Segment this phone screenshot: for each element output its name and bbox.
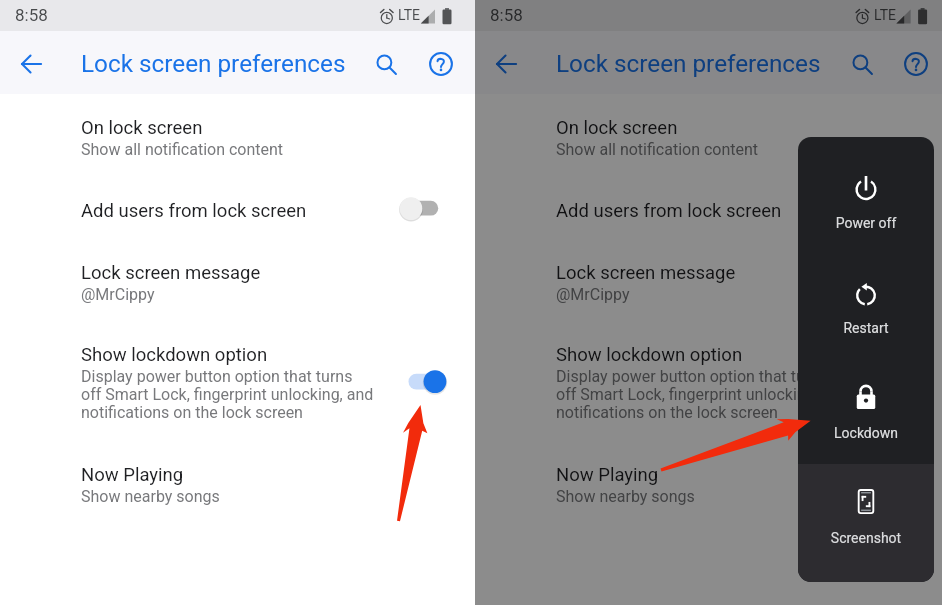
staticText: Show all notification content <box>81 140 284 159</box>
button[interactable]: Help <box>896 44 936 84</box>
staticText: On lock screen <box>556 117 678 139</box>
staticText: LTE <box>398 7 420 23</box>
button[interactable]: Add users from lock screen <box>0 191 475 221</box>
button[interactable]: Now Playing <box>0 455 475 503</box>
staticText: Lock screen preferences <box>81 49 346 77</box>
staticText: Now Playing <box>81 464 184 486</box>
staticText: Lock screen preferences <box>556 49 821 77</box>
staticText: @MrCippy <box>556 285 630 304</box>
button[interactable]: Restart <box>798 242 934 347</box>
button[interactable]: On lock screen <box>475 108 942 156</box>
staticText: Add users from lock screen <box>556 200 782 222</box>
button[interactable]: Back <box>486 43 527 84</box>
button[interactable]: Lock screen message <box>475 253 942 301</box>
staticText: Display power button option that turns o… <box>81 367 374 422</box>
button[interactable]: Now Playing <box>475 455 942 503</box>
staticText: Show nearby songs <box>81 487 220 506</box>
staticText: Lockdown <box>798 425 934 441</box>
staticText: 8:58 <box>15 5 48 25</box>
button[interactable]: Add users from lock screen, off <box>872 191 920 227</box>
staticText: Screenshot <box>798 530 934 546</box>
button[interactable]: Add users from lock screen <box>475 191 942 221</box>
staticText: Now Playing <box>556 464 659 486</box>
button[interactable]: Back <box>11 43 52 84</box>
button[interactable]: Show lockdown option <box>475 335 942 419</box>
staticText: Lock screen message <box>81 262 261 284</box>
staticText: Lock screen message <box>556 262 736 284</box>
staticText: Show lockdown option <box>556 344 743 366</box>
button[interactable]: Search <box>366 44 406 84</box>
button[interactable]: Screenshot <box>798 452 934 557</box>
staticText: LTE <box>874 7 896 23</box>
staticText: Add users from lock screen <box>81 200 307 222</box>
staticText: 8:58 <box>490 5 523 25</box>
staticText: On lock screen <box>81 117 203 139</box>
staticText: Restart <box>798 320 934 336</box>
button[interactable]: Help <box>421 44 461 84</box>
staticText: @MrCippy <box>81 285 155 304</box>
button[interactable]: On lock screen <box>0 108 475 156</box>
button[interactable]: Show lockdown option <box>0 335 475 419</box>
button[interactable]: Add users from lock screen, off <box>396 191 444 227</box>
staticText: Display power button option that turns o… <box>556 367 849 422</box>
staticText: Power off <box>798 215 934 231</box>
staticText: Show lockdown option <box>81 344 268 366</box>
button[interactable]: Lockdown <box>798 347 934 452</box>
button[interactable]: Power off <box>798 137 934 242</box>
button[interactable]: Search <box>842 44 882 84</box>
staticText: Show nearby songs <box>556 487 695 506</box>
staticText: Show all notification content <box>556 140 759 159</box>
button[interactable]: Lock screen message <box>0 253 475 301</box>
button[interactable]: Show lockdown option, on <box>405 364 453 400</box>
